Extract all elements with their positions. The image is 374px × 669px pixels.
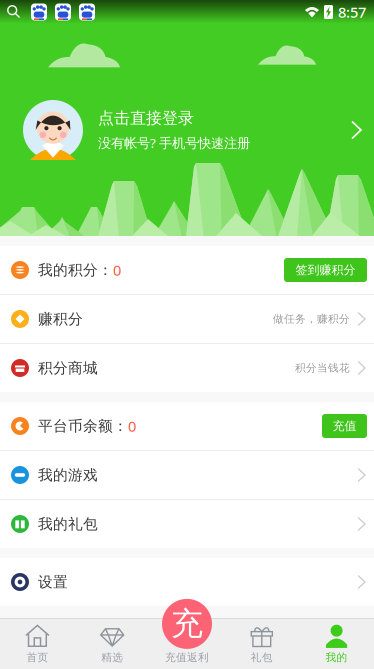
- staticText: 0: [113, 260, 121, 280]
- button[interactable]: 积分商城: [0, 344, 374, 392]
- staticText: 我的礼包: [38, 515, 98, 533]
- button[interactable]: 赚积分: [0, 295, 374, 343]
- staticText: 充值: [332, 419, 356, 433]
- staticText: 点击直接登录: [98, 108, 194, 128]
- staticText: 没有帐号? 手机号快速注册: [98, 134, 250, 152]
- staticText: 做任务，赚积分: [273, 312, 350, 325]
- staticText: 我的游戏: [38, 466, 98, 484]
- staticText: 充: [171, 604, 203, 643]
- staticText: 精选: [101, 651, 123, 664]
- button[interactable]: 点击直接登录: [0, 24, 374, 236]
- button[interactable]: 平台币余额：: [0, 402, 374, 450]
- staticText: 首页: [26, 651, 48, 664]
- button[interactable]: 首页: [0, 619, 75, 669]
- staticText: 积分当钱花: [295, 361, 350, 374]
- button[interactable]: 礼包: [224, 619, 299, 669]
- button[interactable]: 我的游戏: [0, 451, 374, 499]
- staticText: 我的积分：: [38, 261, 113, 279]
- staticText: 积分商城: [38, 359, 98, 377]
- button[interactable]: 我的积分：: [0, 246, 374, 294]
- staticText: 赚积分: [38, 310, 83, 328]
- staticText: 签到赚积分: [295, 263, 355, 277]
- staticText: 礼包: [251, 651, 273, 664]
- button[interactable]: 我的礼包: [0, 500, 374, 548]
- staticText: 0: [128, 416, 136, 436]
- staticText: 充值返利: [165, 651, 209, 664]
- staticText: 平台币余额：: [38, 417, 128, 435]
- staticText: 设置: [38, 573, 68, 591]
- button[interactable]: 精选: [75, 619, 150, 669]
- button[interactable]: 设置: [0, 558, 374, 606]
- staticText: 我的: [326, 651, 348, 664]
- staticText: 8:57: [338, 2, 366, 22]
- button[interactable]: 我的: [299, 619, 374, 669]
